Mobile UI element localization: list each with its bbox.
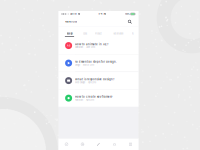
button[interactable]: Library bbox=[122, 138, 138, 150]
button[interactable]: Code bbox=[82, 27, 88, 37]
staticText: Design · March 2018 bbox=[75, 64, 94, 66]
staticText: Code bbox=[83, 32, 87, 35]
staticText: Animation · June 2018 bbox=[75, 46, 95, 48]
staticText: Product bbox=[95, 32, 102, 35]
staticText: Ae bbox=[67, 44, 70, 47]
button[interactable]: Explore bbox=[58, 138, 74, 150]
staticText: Web Design · April 2018 bbox=[75, 81, 96, 84]
staticText: Te bbox=[131, 32, 133, 35]
button[interactable]: Write bbox=[90, 138, 106, 150]
staticText: How to create keyframes? bbox=[75, 95, 112, 98]
staticText: Your Articles bbox=[65, 21, 77, 23]
staticText: Carrier bbox=[70, 13, 77, 15]
staticText: Automation bbox=[113, 32, 123, 35]
button[interactable]: Ae bbox=[58, 37, 138, 54]
button[interactable]: Search bbox=[127, 19, 133, 25]
staticText: 10 Essential steps for design. bbox=[75, 60, 117, 63]
button[interactable]: Te bbox=[130, 27, 134, 37]
staticText: Animation · April 2018 bbox=[75, 99, 94, 101]
button[interactable]: Product bbox=[94, 27, 103, 37]
staticText: Design bbox=[66, 32, 72, 35]
button[interactable]: Design bbox=[65, 27, 74, 37]
button[interactable]: What is responsive design? bbox=[58, 72, 138, 89]
staticText: 100% bbox=[125, 13, 130, 15]
button[interactable]: Automation bbox=[112, 27, 124, 37]
staticText: How to animate in AE? bbox=[75, 43, 108, 46]
staticText: What is responsive design? bbox=[75, 78, 114, 81]
button[interactable]: 10 Essential steps for design. bbox=[58, 54, 138, 72]
staticText: 9:41 AM bbox=[98, 13, 106, 15]
button[interactable]: Discover bbox=[74, 138, 90, 150]
button[interactable]: Notifications bbox=[106, 138, 122, 150]
button[interactable]: How to create keyframes? bbox=[58, 90, 138, 107]
